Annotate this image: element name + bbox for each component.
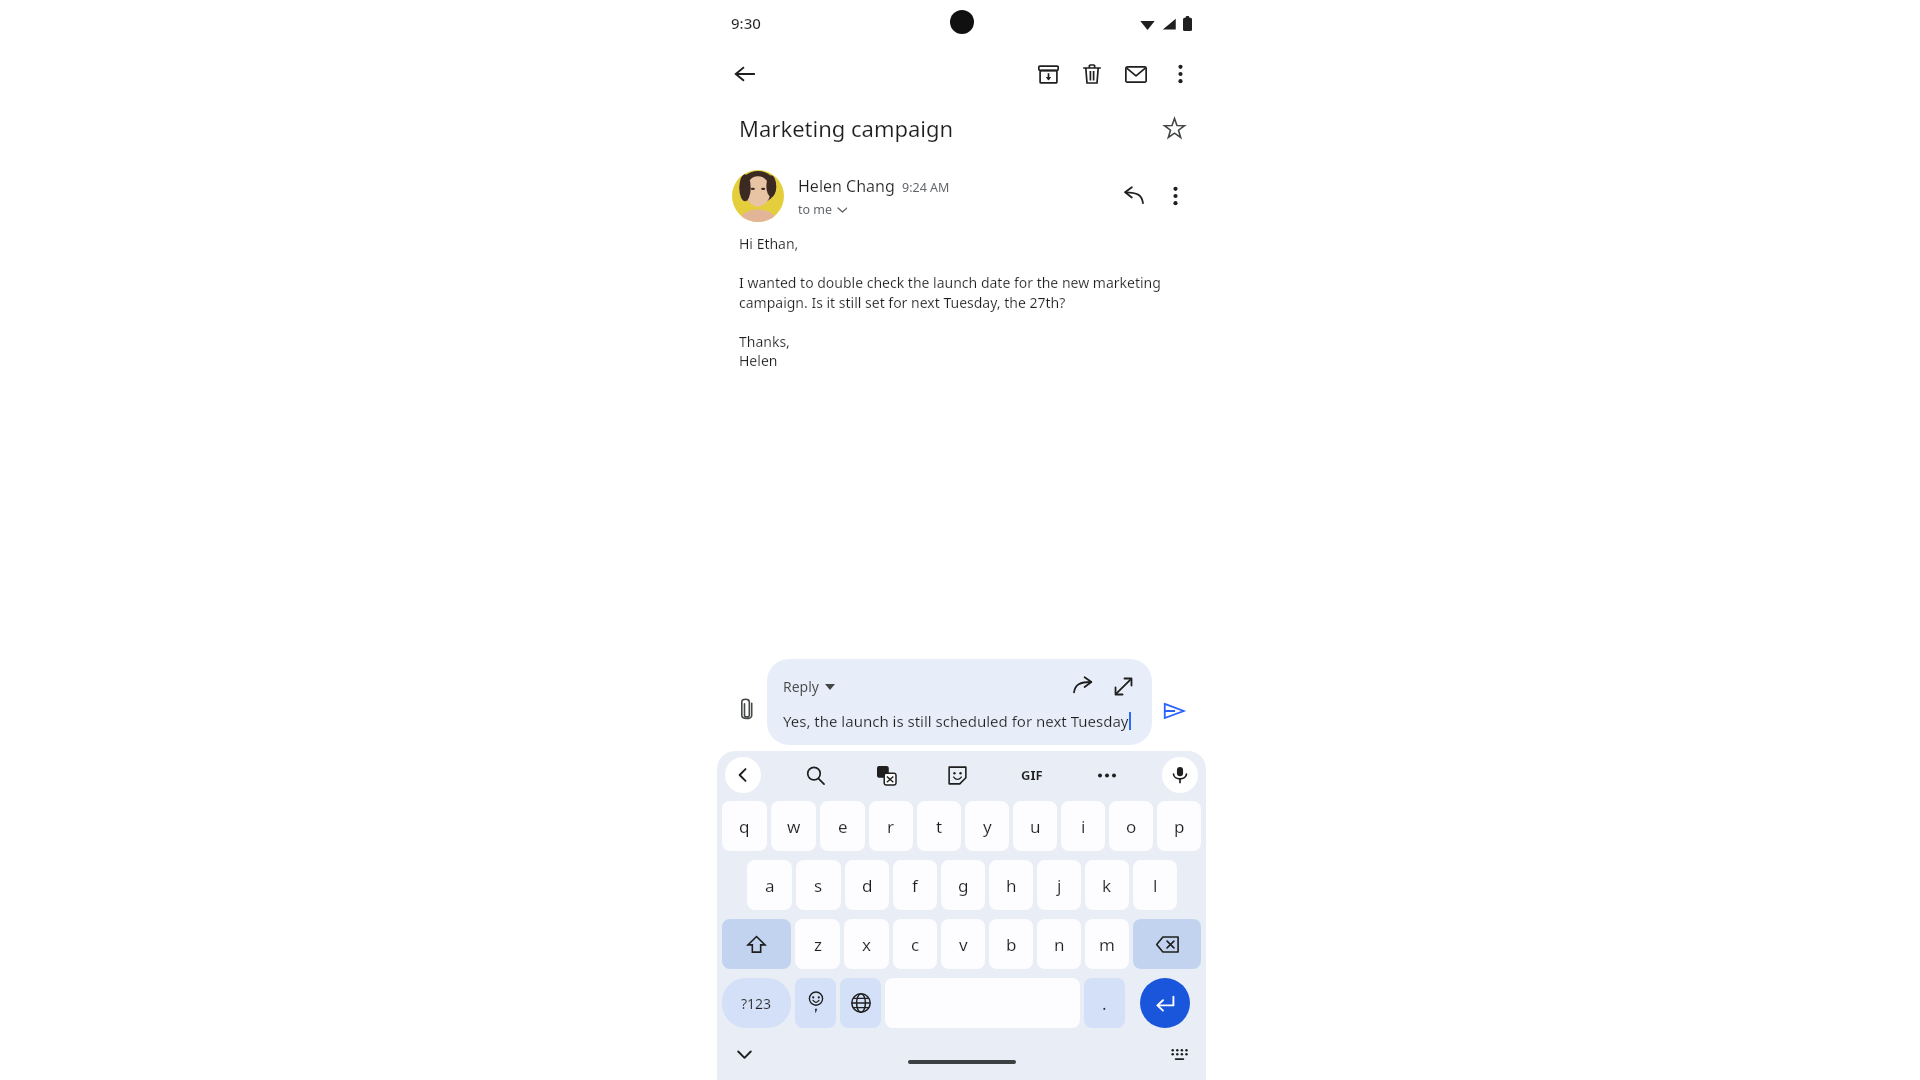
staticText: s <box>814 874 823 897</box>
button[interactable]: Search <box>798 758 832 792</box>
button[interactable]: v <box>941 919 985 969</box>
staticText: u <box>1030 815 1041 838</box>
staticText: . <box>1102 992 1107 1015</box>
staticText: p <box>1174 815 1185 838</box>
button[interactable]: Archive <box>1026 52 1070 96</box>
button[interactable]: GIF <box>1012 755 1052 795</box>
button[interactable]: Expand <box>1108 671 1138 701</box>
button[interactable]: s <box>796 860 841 910</box>
button[interactable]: l <box>1133 860 1177 910</box>
button[interactable]: Back <box>723 52 767 96</box>
staticText: h <box>1006 874 1017 897</box>
staticText: ?123 <box>741 994 772 1013</box>
button[interactable]: Reply <box>1112 175 1154 217</box>
button[interactable]: w <box>771 801 816 851</box>
staticText: d <box>862 874 873 897</box>
button[interactable]: g <box>941 860 985 910</box>
button[interactable]: Voice input <box>1162 757 1198 793</box>
button[interactable]: k <box>1085 860 1129 910</box>
button[interactable]: f <box>893 860 937 910</box>
staticText: GIF <box>1021 766 1043 784</box>
button[interactable]: u <box>1013 801 1057 851</box>
staticText: Helen <box>739 351 778 370</box>
staticText: f <box>912 874 918 897</box>
button[interactable]: d <box>845 860 889 910</box>
staticText: y <box>983 815 992 838</box>
staticText: a <box>765 874 775 897</box>
button[interactable]: r <box>869 801 913 851</box>
button[interactable]: Keyboard settings <box>1162 1037 1196 1071</box>
staticText: w <box>787 815 801 838</box>
staticText: l <box>1153 874 1158 897</box>
button[interactable]: j <box>1037 860 1081 910</box>
button[interactable]: c <box>893 919 937 969</box>
staticText: c <box>911 933 920 956</box>
button[interactable]: Translate <box>869 758 903 792</box>
staticText: Helen Chang <box>798 175 895 197</box>
button[interactable]: Reply <box>767 659 1152 745</box>
button[interactable]: m <box>1085 919 1129 969</box>
button[interactable]: t <box>917 801 961 851</box>
button[interactable]: Mark unread <box>1114 52 1158 96</box>
staticText: q <box>739 815 750 838</box>
button[interactable]: Star <box>1154 108 1194 148</box>
button[interactable]: Emoji <box>795 978 836 1028</box>
staticText: I wanted to double check the launch date… <box>739 273 1186 312</box>
button[interactable]: x <box>844 919 889 969</box>
button[interactable]: n <box>1037 919 1081 969</box>
button[interactable]: p <box>1157 801 1201 851</box>
staticText: Hi Ethan, <box>739 234 799 253</box>
button[interactable]: e <box>820 801 865 851</box>
staticText: z <box>814 933 822 956</box>
staticText: Marketing campaign <box>739 113 954 143</box>
button[interactable]: Send <box>1152 689 1196 733</box>
staticText: j <box>1057 874 1062 897</box>
button[interactable]: Enter <box>1140 978 1190 1028</box>
button[interactable]: Stickers <box>940 758 974 792</box>
staticText: to me <box>798 201 833 218</box>
button[interactable]: Forward <box>1068 671 1098 701</box>
button[interactable]: Shift <box>722 919 791 969</box>
button[interactable]: y <box>965 801 1009 851</box>
button[interactable]: q <box>722 801 767 851</box>
staticText: Yes, the launch is still scheduled for n… <box>783 711 1129 731</box>
button[interactable]: ?123 <box>722 978 791 1028</box>
staticText: r <box>887 815 895 838</box>
staticText: m <box>1099 933 1115 956</box>
button[interactable]: Back <box>725 757 761 793</box>
button[interactable]: Hide keyboard <box>727 1037 761 1071</box>
button[interactable]: Delete <box>1070 52 1114 96</box>
button[interactable]: . <box>1084 978 1125 1028</box>
button[interactable]: b <box>989 919 1033 969</box>
staticText: n <box>1054 933 1065 956</box>
staticText: 9:24 AM <box>902 179 950 196</box>
staticText: x <box>862 933 871 956</box>
staticText: Reply <box>783 677 819 696</box>
button[interactable]: to me <box>798 201 847 218</box>
staticText: i <box>1081 815 1086 838</box>
staticText: v <box>959 933 968 956</box>
button[interactable]: More <box>1090 758 1124 792</box>
button[interactable]: Backspace <box>1133 919 1201 969</box>
button[interactable]: Attach file <box>727 689 767 729</box>
button[interactable]: Reply <box>783 677 835 696</box>
staticText: g <box>958 874 969 897</box>
staticText: t <box>936 815 943 838</box>
staticText: o <box>1126 815 1137 838</box>
button[interactable] <box>732 170 784 222</box>
staticText: k <box>1102 874 1112 897</box>
button[interactable]: a <box>747 860 792 910</box>
button[interactable]: o <box>1109 801 1153 851</box>
button[interactable]: z <box>795 919 840 969</box>
staticText: 9:30 <box>731 13 761 33</box>
staticText: e <box>838 815 848 838</box>
staticText: b <box>1006 933 1017 956</box>
staticText: Thanks, <box>739 332 790 351</box>
button[interactable]: i <box>1061 801 1105 851</box>
button[interactable]: More options <box>1154 175 1196 217</box>
button[interactable]: h <box>989 860 1033 910</box>
button[interactable]: More options <box>1158 52 1202 96</box>
button[interactable]: Change language <box>840 978 881 1028</box>
